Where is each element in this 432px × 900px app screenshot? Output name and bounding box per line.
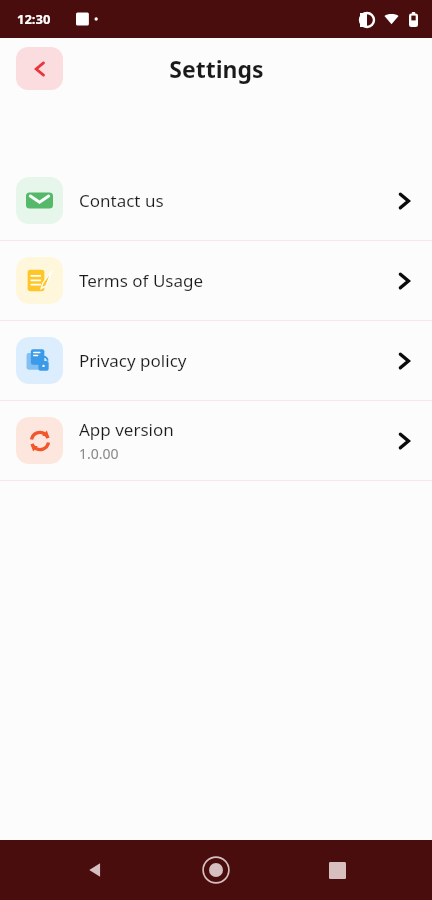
button[interactable]: Recent apps [311, 844, 363, 896]
button[interactable]: Contact us [0, 161, 432, 240]
button[interactable]: App version [0, 401, 432, 480]
button[interactable]: Back [16, 47, 63, 90]
button[interactable]: Terms of Usage [0, 241, 432, 320]
staticText: Privacy policy [79, 349, 187, 372]
button[interactable]: Privacy policy [0, 321, 432, 400]
button[interactable]: Home [190, 844, 242, 896]
staticText: Terms of Usage [79, 269, 204, 292]
button[interactable]: Back [69, 844, 121, 896]
staticText: App version [79, 418, 174, 441]
staticText: 1.0.00 [79, 444, 119, 463]
staticText: 12:30 [17, 10, 51, 28]
staticText: Settings [169, 53, 264, 84]
staticText: Contact us [79, 189, 164, 212]
